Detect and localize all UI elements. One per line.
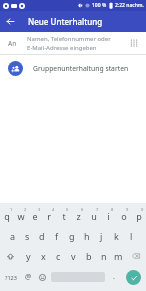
staticText: w: [17, 210, 25, 222]
button[interactable]: l: [124, 226, 139, 246]
button[interactable]: z: [71, 206, 86, 226]
staticText: 0: [141, 207, 144, 212]
staticText: g: [69, 230, 75, 242]
staticText: s: [25, 230, 30, 242]
button[interactable]: u: [86, 206, 101, 226]
staticText: Namen, Telefonnummer oder: [27, 35, 111, 43]
staticText: l: [130, 230, 133, 242]
button[interactable]: k: [109, 226, 124, 246]
staticText: c: [56, 250, 61, 262]
button[interactable]: ?123: [0, 266, 21, 288]
staticText: @: [25, 272, 32, 282]
staticText: 1: [10, 207, 13, 212]
button[interactable]: m: [111, 246, 126, 266]
button[interactable]: .: [107, 266, 121, 288]
staticText: y: [26, 250, 31, 262]
staticText: E-Mail-Adresse eingeben: [27, 44, 97, 52]
button[interactable]: Umschalt: [0, 246, 21, 266]
staticText: t: [62, 210, 66, 222]
staticText: p: [136, 210, 142, 222]
button[interactable]: Emoji: [35, 266, 49, 288]
staticText: Gruppenunterhaltung starten: [33, 64, 129, 73]
button[interactable]: t: [56, 206, 71, 226]
button[interactable]: d: [34, 226, 49, 246]
button[interactable]: Senden: [126, 270, 141, 285]
button[interactable]: w: [14, 206, 28, 226]
staticText: j: [100, 230, 103, 242]
button[interactable]: s: [20, 226, 34, 246]
staticText: k: [114, 230, 119, 242]
staticText: 2:22 nachm.: [115, 2, 144, 9]
staticText: 8: [111, 207, 114, 212]
staticText: 4: [52, 207, 55, 212]
staticText: ?123: [5, 274, 17, 281]
button[interactable]: v: [66, 246, 81, 266]
staticText: a: [10, 230, 16, 242]
staticText: v: [71, 250, 76, 262]
button[interactable]: f: [49, 226, 64, 246]
staticText: u: [91, 210, 97, 222]
button[interactable]: g: [64, 226, 79, 246]
staticText: z: [76, 210, 81, 222]
button[interactable]: Löschen: [126, 246, 146, 266]
button[interactable]: y: [21, 246, 36, 266]
staticText: o: [121, 210, 127, 222]
staticText: m: [114, 250, 123, 262]
staticText: f: [55, 230, 59, 242]
button[interactable]: x: [36, 246, 51, 266]
button[interactable]: a: [6, 226, 20, 246]
staticText: d: [39, 230, 45, 242]
button[interactable]: p: [131, 206, 146, 226]
staticText: An: [8, 39, 17, 48]
button[interactable]: An: [0, 32, 146, 54]
staticText: b: [86, 250, 92, 262]
staticText: e: [32, 210, 38, 222]
button[interactable]: @: [21, 266, 35, 288]
staticText: h: [84, 230, 90, 242]
button[interactable]: i: [101, 206, 116, 226]
staticText: 7: [96, 207, 99, 212]
button[interactable]: e: [28, 206, 42, 226]
button[interactable]: o: [116, 206, 131, 226]
staticText: 3: [38, 207, 41, 212]
staticText: x: [41, 250, 46, 262]
staticText: 100 %: [92, 2, 107, 9]
button[interactable]: Zurück: [0, 11, 21, 32]
button[interactable]: Gruppenunterhaltung starten: [0, 55, 146, 81]
staticText: 6: [81, 207, 84, 212]
staticText: r: [47, 210, 51, 222]
button[interactable]: h: [79, 226, 94, 246]
button[interactable]: j: [94, 226, 109, 246]
staticText: 9: [126, 207, 129, 212]
staticText: 5: [66, 207, 69, 212]
staticText: .: [113, 272, 115, 282]
staticText: Neue Unterhaltung: [28, 16, 103, 27]
button[interactable]: n: [96, 246, 111, 266]
button[interactable]: b: [81, 246, 96, 266]
staticText: 2: [24, 207, 27, 212]
button[interactable]: r: [42, 206, 56, 226]
staticText: i: [107, 210, 110, 222]
staticText: n: [101, 250, 107, 262]
button[interactable]: q: [0, 206, 14, 226]
staticText: q: [4, 210, 10, 222]
button[interactable]: Wähltastatur: [124, 33, 144, 53]
button[interactable]: c: [51, 246, 66, 266]
